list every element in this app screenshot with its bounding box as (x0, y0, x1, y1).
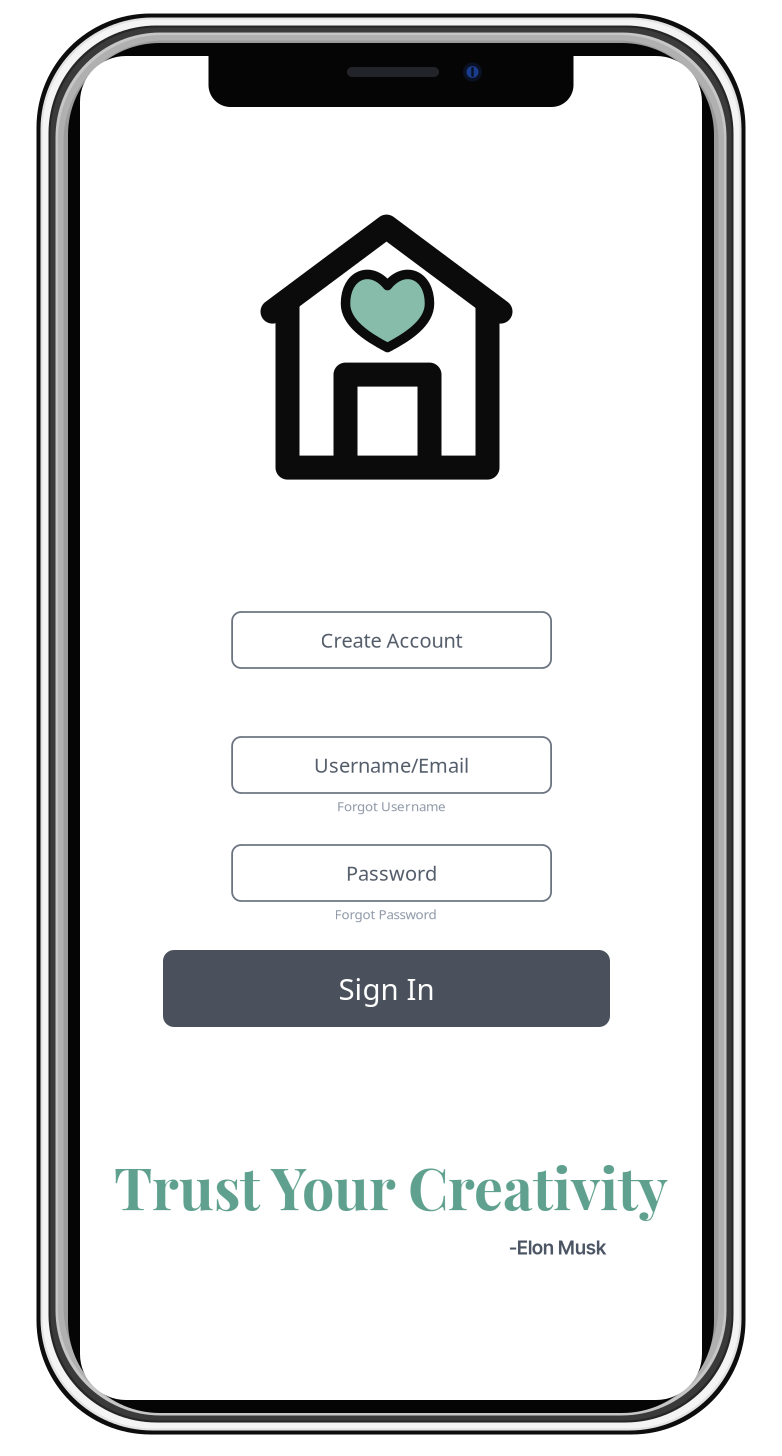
staticText: Username/Email (314, 752, 469, 778)
button[interactable]: Password (232, 845, 551, 901)
button[interactable]: Username/Email (232, 737, 551, 793)
button[interactable]: Forgot Password (334, 901, 436, 927)
button[interactable]: Create Account (232, 612, 551, 668)
staticText: Password (346, 860, 437, 886)
staticText: Forgot Username (337, 797, 446, 815)
staticText: Sign In (338, 969, 434, 1008)
button[interactable]: Forgot Username (337, 793, 446, 819)
staticText: Trust Your Creativity (114, 1148, 668, 1224)
button[interactable]: Sign In (163, 950, 610, 1027)
staticText: Create Account (321, 627, 463, 653)
staticText: Forgot Password (334, 905, 436, 923)
staticText: -Elon Musk (509, 1236, 606, 1259)
